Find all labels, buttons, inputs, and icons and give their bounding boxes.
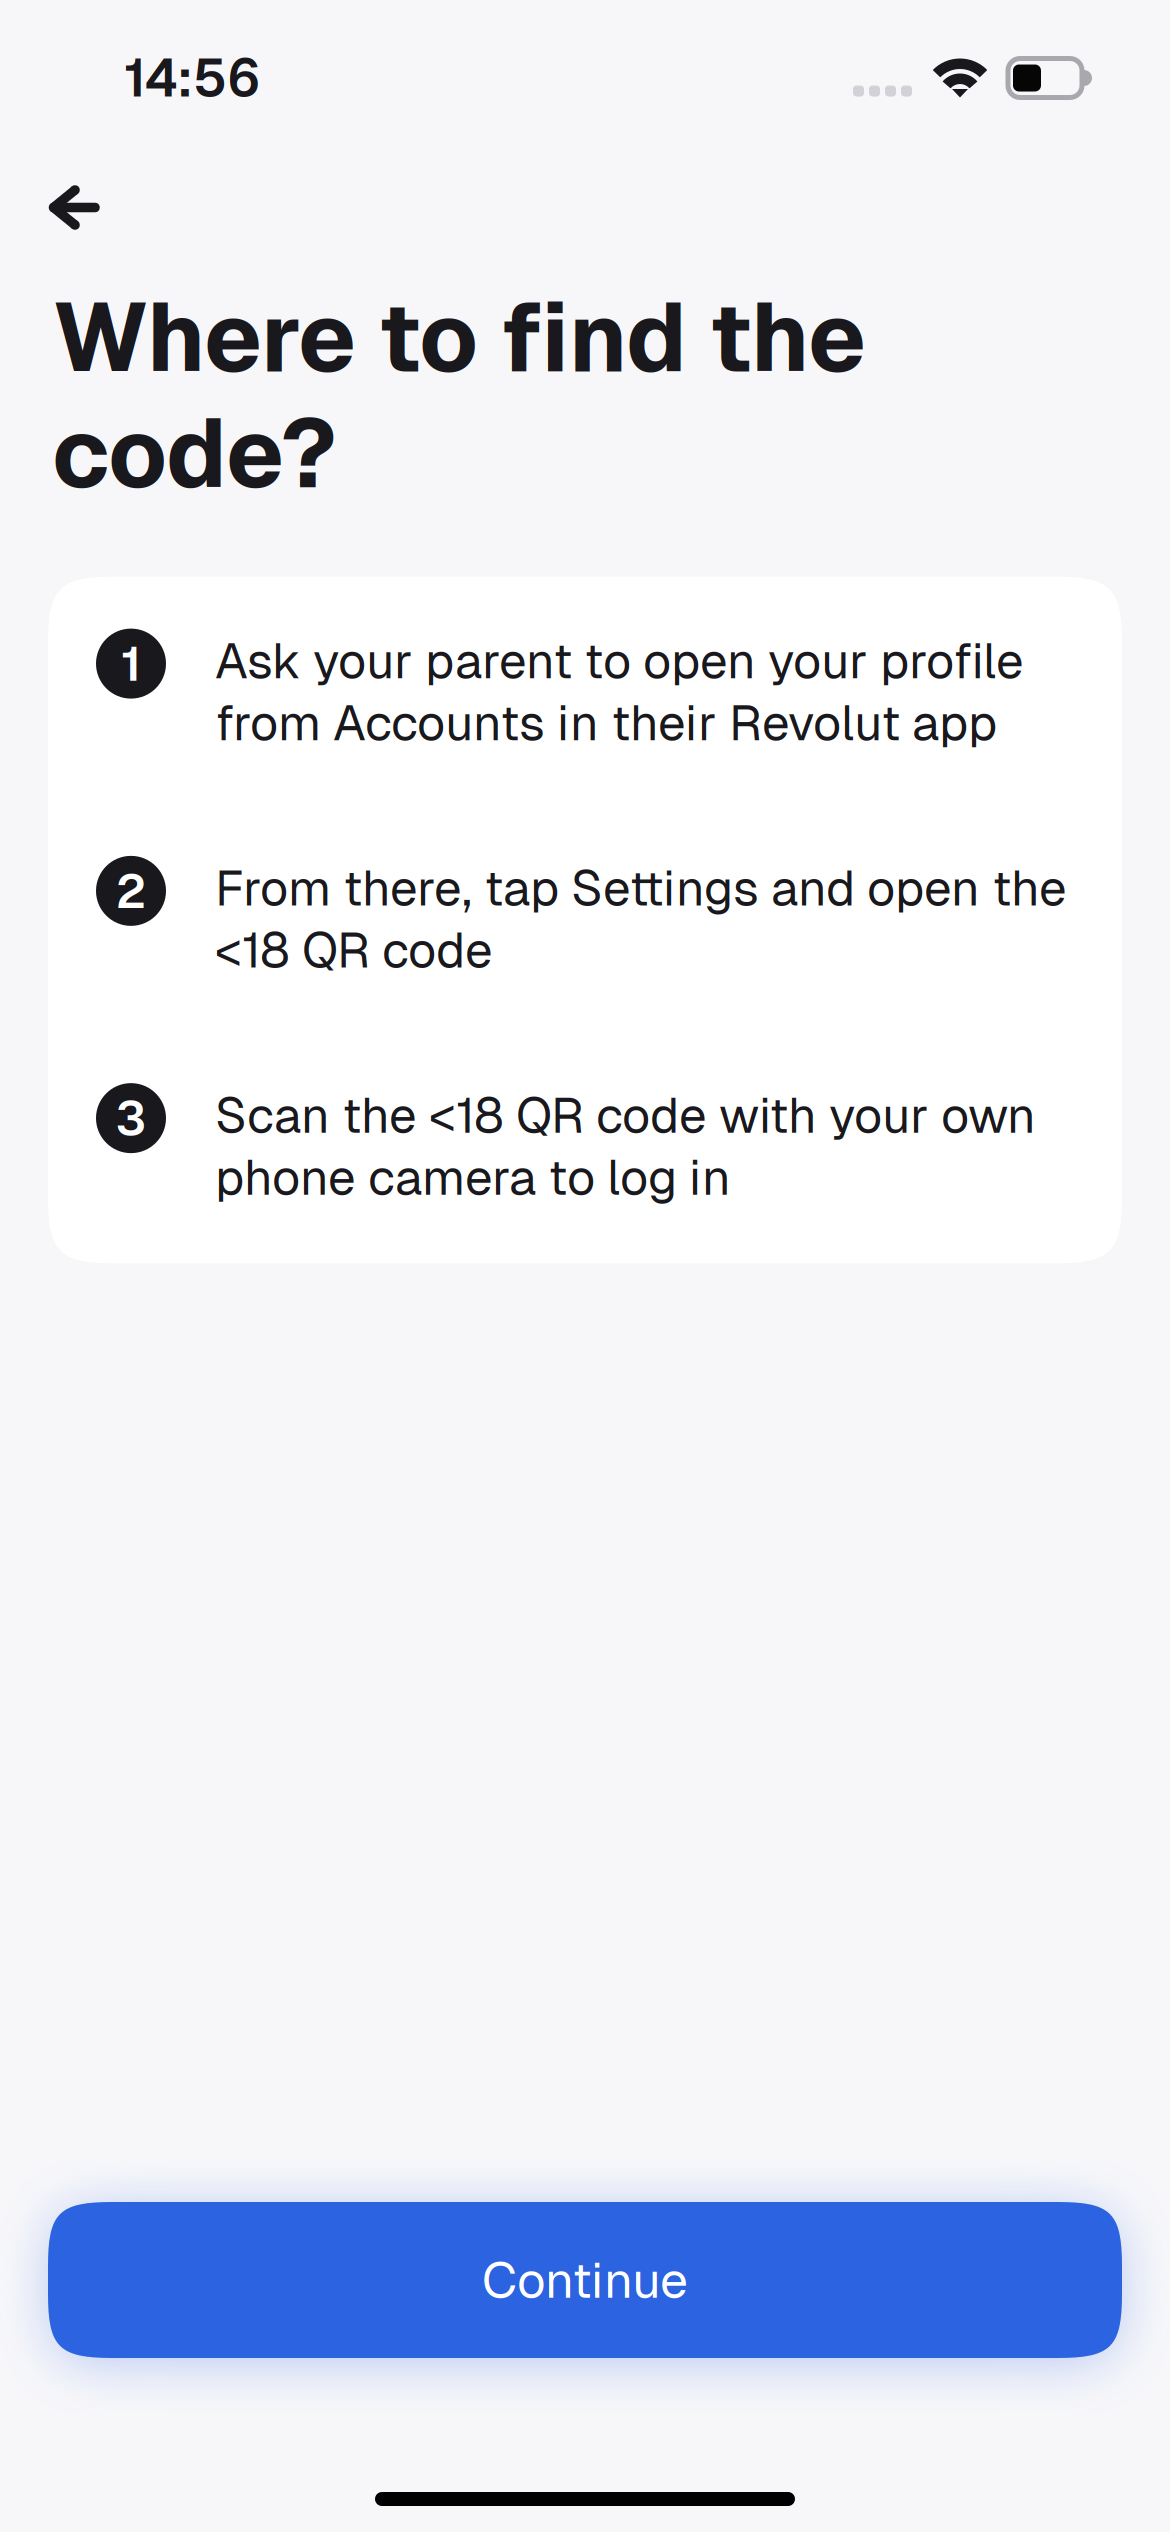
staticText: From there, tap Settings and open the <1…	[215, 856, 1067, 982]
staticText: 2	[115, 860, 146, 922]
button[interactable]: Continue	[48, 2202, 1122, 2358]
staticText: Ask your parent to open your profile fro…	[215, 629, 1024, 755]
staticText: Continue	[482, 2247, 688, 2312]
staticText: Scan the <18 QR code with your own phone…	[215, 1083, 1036, 1209]
staticText: 1	[121, 632, 141, 695]
staticText: 14:56	[124, 44, 261, 112]
staticText: Where to find the code?	[52, 275, 866, 516]
staticText: 3	[115, 1087, 146, 1149]
button[interactable]: Back	[0, 106, 1170, 262]
